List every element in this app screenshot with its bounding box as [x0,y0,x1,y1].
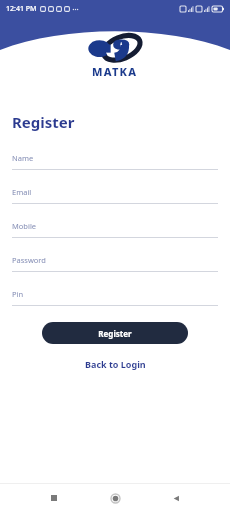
staticText: Mobile [12,221,37,231]
staticText: MATKA [92,64,138,79]
staticText: Pin [12,289,24,299]
button[interactable]: Password [12,252,218,272]
staticText: Password [12,255,46,265]
staticText: Email [12,187,32,197]
staticText: Register [12,112,75,132]
button[interactable]: Recent apps [40,484,68,512]
button[interactable]: Back to Login [12,356,218,372]
staticText: Register [98,328,132,339]
button[interactable]: Mobile [12,218,218,238]
button[interactable]: Pin [12,286,218,306]
button[interactable]: Register [42,322,188,344]
button[interactable]: Email [12,184,218,204]
button[interactable]: Back [162,484,190,512]
staticText: Name [12,153,34,163]
button[interactable]: Home [101,484,129,512]
staticText: Back to Login [85,358,146,370]
staticText: 12:41 PM [6,4,37,14]
button[interactable]: Name [12,150,218,170]
